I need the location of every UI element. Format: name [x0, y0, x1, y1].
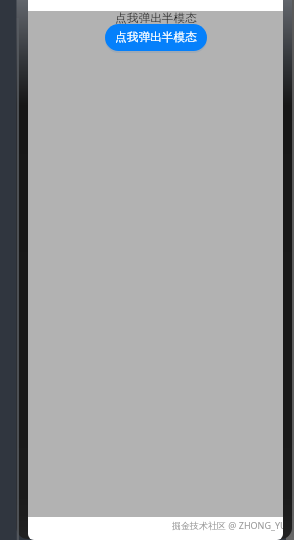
- staticText: 掘金技术社区 @ ZHONG_YU: [172, 519, 283, 531]
- staticText: 点我弹出半模态: [115, 30, 197, 45]
- staticText: 点我弹出半模态: [115, 11, 197, 26]
- button[interactable]: 点我弹出半模态: [105, 24, 207, 51]
